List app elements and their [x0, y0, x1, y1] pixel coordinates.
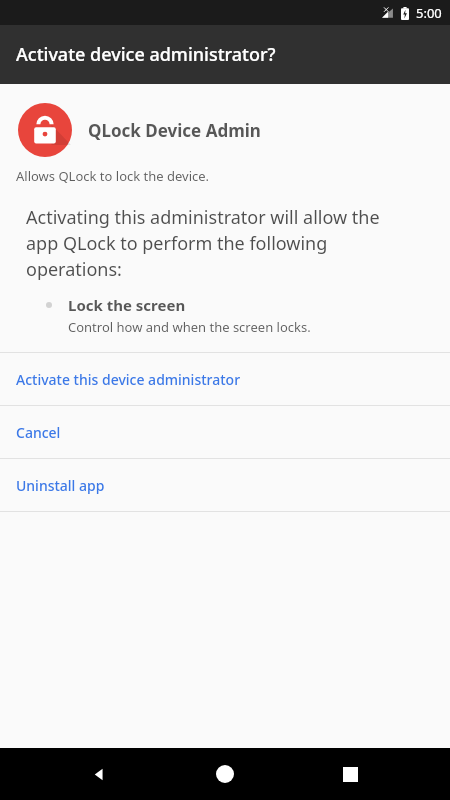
button[interactable]: Back: [80, 756, 116, 792]
staticText: Activating this administrator will allow…: [26, 205, 392, 282]
staticText: Uninstall app: [16, 476, 105, 495]
staticText: QLock Device Admin: [88, 119, 261, 142]
button[interactable]: Recent apps: [332, 756, 368, 792]
staticText: Control how and when the screen locks.: [68, 318, 311, 336]
button[interactable]: Home: [207, 756, 243, 792]
button[interactable]: Activate this device administrator: [0, 353, 450, 405]
staticText: 5:00: [416, 4, 442, 22]
staticText: Allows QLock to lock the device.: [16, 167, 210, 185]
button[interactable]: Cancel: [0, 406, 450, 458]
staticText: Cancel: [16, 423, 61, 442]
staticText: Activate this device administrator: [16, 370, 241, 389]
staticText: Lock the screen: [68, 295, 186, 315]
button[interactable]: Uninstall app: [0, 459, 450, 511]
staticText: Activate device administrator?: [16, 42, 276, 67]
